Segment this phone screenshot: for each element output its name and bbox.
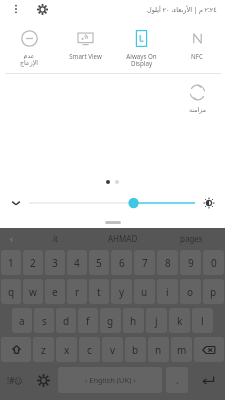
button[interactable]: 1 [1,250,21,275]
staticText: 2 [30,256,36,270]
button[interactable]: Previous suggestions [0,228,22,248]
button[interactable]: l [192,308,213,333]
button[interactable]: v [102,337,123,362]
staticText: r [75,285,80,299]
staticText: it [53,233,58,244]
button[interactable]: t [89,279,109,304]
button[interactable]: 4 [67,250,87,275]
button[interactable]: 7 [134,250,155,275]
button[interactable]: مزامنة [169,74,225,118]
staticText: ‹ English (UK) › [85,375,136,385]
button[interactable]: b [125,337,146,362]
staticText: f [86,314,90,328]
button[interactable]: Backspace [194,337,224,362]
button[interactable]: 9 [180,250,201,275]
button[interactable]: k [169,308,190,333]
button[interactable]: pages [157,228,225,248]
button[interactable]: 8 [157,250,178,275]
staticText: y [119,285,125,299]
staticText: p [210,285,217,299]
staticText: 7 [142,256,148,270]
button[interactable]: m [171,337,192,362]
button[interactable]: NFC [169,20,225,65]
staticText: m [177,343,187,357]
staticText: 4 [74,256,80,270]
button[interactable]: More options [8,1,24,17]
button[interactable]: u [134,279,155,304]
button[interactable]: a [12,308,32,333]
button[interactable]: Enter [192,367,223,393]
staticText: j [155,314,158,328]
staticText: s [42,314,47,328]
staticText: 6 [119,256,125,270]
staticText: عدم الإزعاج [20,52,38,67]
staticText: 5 [96,256,102,270]
button[interactable]: Brightness slider [29,193,195,213]
button[interactable]: Smart View [57,20,113,65]
staticText: !#☺ [7,375,23,386]
button[interactable]: o [180,279,201,304]
button[interactable]: 2 [23,250,43,275]
staticText: Smart View [69,52,102,60]
button[interactable]: x [56,337,77,362]
button[interactable]: j [146,308,167,333]
button[interactable]: 0 [203,250,224,275]
staticText: 9 [188,256,194,270]
staticText: مزامنة [189,106,206,113]
staticText: NFC [191,52,203,60]
staticText: e [52,285,58,299]
button[interactable]: s [34,308,54,333]
button[interactable]: d [56,308,76,333]
staticText: Always On Display [126,52,157,68]
staticText: i [166,285,169,299]
button[interactable]: w [23,279,43,304]
button[interactable]: Auto brightness [200,194,218,212]
button[interactable]: e [45,279,65,304]
staticText: 0 [211,256,217,270]
button[interactable]: r [67,279,87,304]
button[interactable]: 5 [89,250,109,275]
staticText: pages [180,233,203,244]
staticText: x [64,343,70,357]
button[interactable]: y [111,279,132,304]
button[interactable]: c [79,337,100,362]
staticText: n [155,343,162,357]
button[interactable]: Shift [1,337,31,362]
staticText: z [41,343,46,357]
staticText: 1 [8,256,14,270]
button[interactable]: h [123,308,144,333]
button[interactable]: Symbols [2,367,28,393]
staticText: k [177,314,183,328]
button[interactable]: 6 [111,250,132,275]
button[interactable]: n [148,337,169,362]
staticText: AHMAD [108,233,138,244]
button[interactable]: AHMAD [89,228,157,248]
button[interactable]: z [33,337,54,362]
button[interactable]: Expand [7,194,25,212]
staticText: ‹ [10,232,13,244]
button[interactable]: q [1,279,21,304]
staticText: h [130,314,137,328]
staticText: t [97,285,101,299]
button[interactable]: f [78,308,98,333]
button[interactable]: Settings [34,1,50,17]
staticText: g [107,314,114,328]
button[interactable]: 3 [45,250,65,275]
staticText: v [110,343,116,357]
staticText: 3 [52,256,58,270]
button[interactable]: Always On Display [113,20,169,73]
staticText: u [141,285,148,299]
button[interactable]: p [203,279,224,304]
button[interactable]: Keyboard settings [32,367,54,393]
button[interactable]: عدم الإزعاج [0,20,57,72]
staticText: o [187,285,194,299]
staticText: 8 [165,256,171,270]
staticText: a [19,314,25,328]
button[interactable]: g [100,308,121,333]
button[interactable]: i [157,279,178,304]
staticText: l [201,314,204,328]
staticText: q [8,285,15,299]
button[interactable]: ‹ English (UK) › [58,367,162,393]
